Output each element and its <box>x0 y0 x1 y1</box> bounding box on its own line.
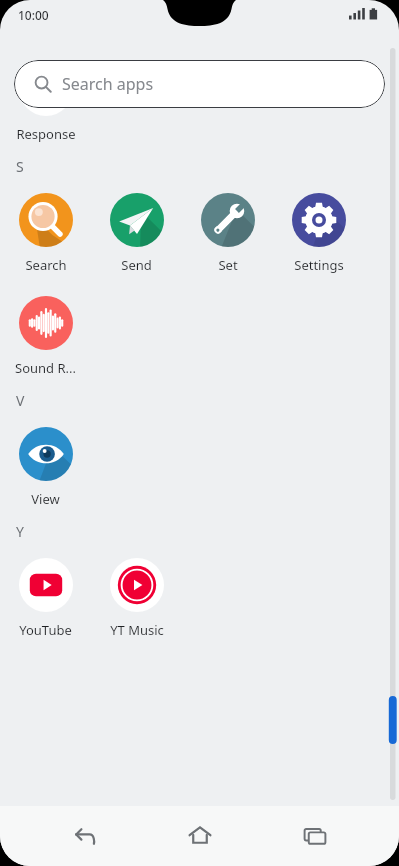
staticText: Settings <box>294 256 344 274</box>
staticText: V <box>16 391 25 410</box>
staticText: Search <box>25 256 67 274</box>
button[interactable]: Recent apps <box>283 806 347 866</box>
staticText: Sound R... <box>15 359 76 377</box>
staticText: Set <box>218 256 238 274</box>
button[interactable]: Response <box>0 58 91 143</box>
staticText: YouTube <box>19 621 72 639</box>
button[interactable]: Settings <box>273 189 364 274</box>
staticText: View <box>31 490 60 508</box>
button[interactable]: YT Music <box>91 554 182 639</box>
button[interactable]: View <box>0 423 91 508</box>
staticText: S <box>16 157 24 176</box>
button[interactable]: Set <box>182 189 273 274</box>
staticText: Search apps <box>62 73 154 95</box>
staticText: Response <box>16 125 76 143</box>
button[interactable]: Back <box>52 806 116 866</box>
button[interactable]: YouTube <box>0 554 91 639</box>
button[interactable]: Sound R... <box>0 292 91 377</box>
staticText: YT Music <box>110 621 164 639</box>
staticText: 10:00 <box>18 7 49 23</box>
button[interactable]: Search apps <box>14 60 385 108</box>
button[interactable]: Send <box>91 189 182 274</box>
staticText: Y <box>16 522 24 541</box>
staticText: Send <box>121 256 152 274</box>
button[interactable]: Search <box>0 189 91 274</box>
button[interactable]: Home <box>168 806 232 866</box>
